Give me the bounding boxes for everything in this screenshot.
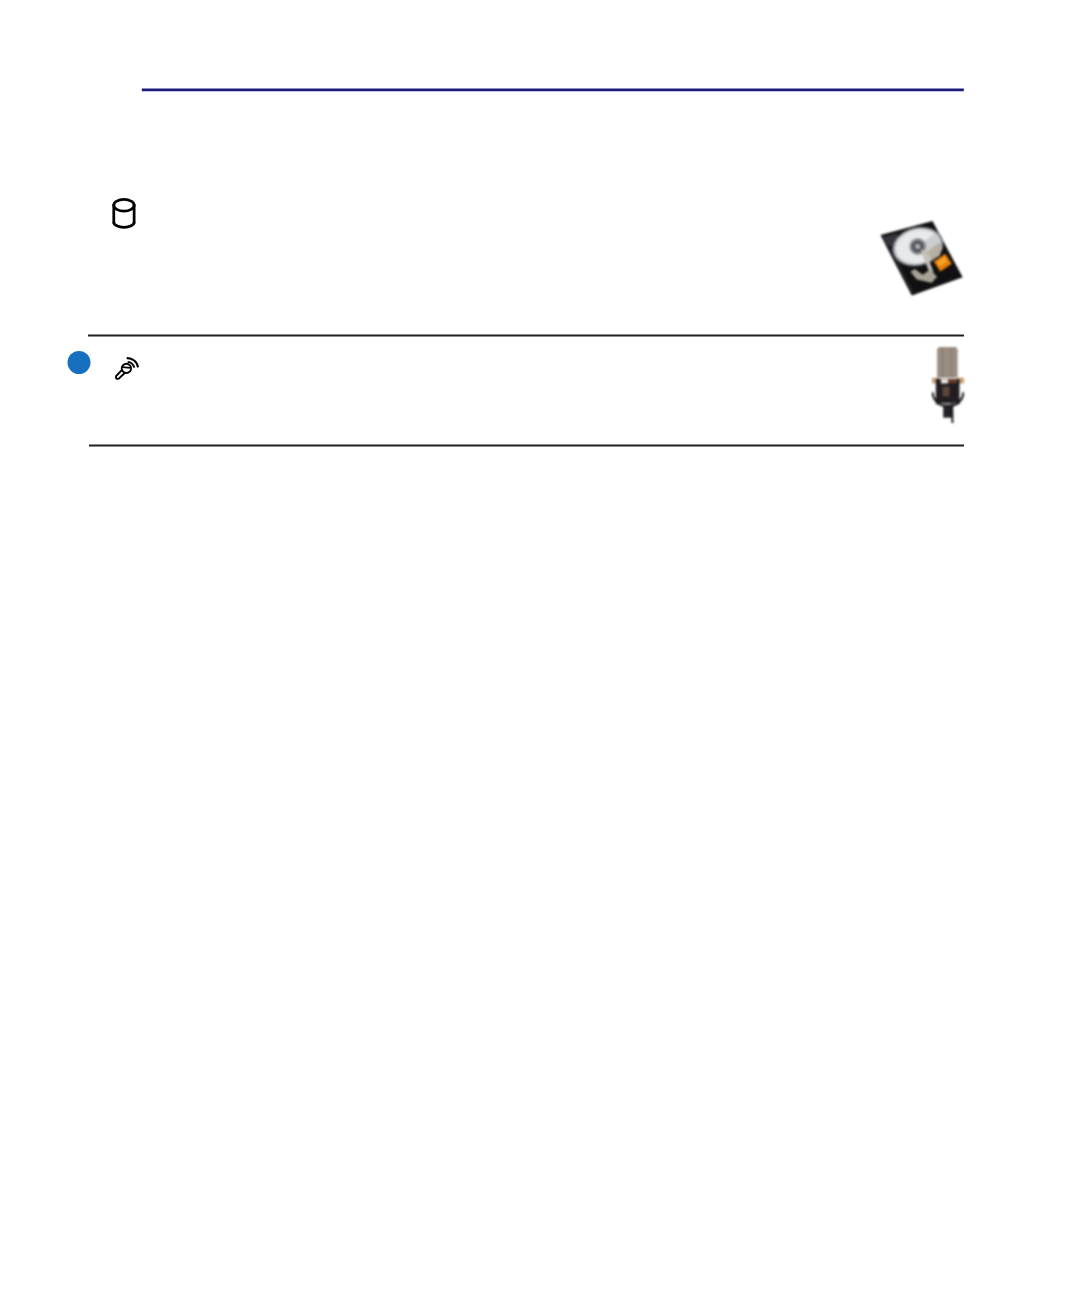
other: Condenser microphone xyxy=(932,347,964,423)
button[interactable]: Condenser microphone xyxy=(60,337,970,447)
button[interactable]: Hard disk drive xyxy=(60,170,970,337)
button[interactable]: Section heading xyxy=(141,88,964,92)
other: Hard disk drive xyxy=(871,215,966,299)
